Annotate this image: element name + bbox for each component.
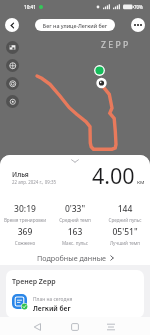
button[interactable]: 30:19 xyxy=(0,203,50,223)
button[interactable]: More options xyxy=(131,18,145,32)
button[interactable]: Recenter xyxy=(6,95,19,108)
staticText: Лучший темп xyxy=(100,240,150,246)
staticText: Средний пульс xyxy=(100,217,150,223)
staticText: 05'51" xyxy=(100,226,150,238)
button[interactable]: Show markers xyxy=(6,77,19,90)
staticText: 70% xyxy=(134,4,143,10)
staticText: 30:19 xyxy=(0,203,50,215)
button[interactable]: Back xyxy=(33,322,43,332)
button[interactable]: Collapse xyxy=(71,159,79,163)
staticText: 144 xyxy=(100,203,150,215)
staticText: План на сегодня xyxy=(33,296,73,303)
staticText: 163 xyxy=(50,226,100,238)
button[interactable]: 369 xyxy=(0,226,50,246)
staticText: Бег на улице·Легкий бег xyxy=(35,22,115,29)
staticText: Подробные данные xyxy=(37,253,107,263)
button[interactable]: Тренер Zepp xyxy=(6,270,144,318)
staticText: ZEPP xyxy=(101,39,131,51)
button[interactable]: Recent apps xyxy=(106,322,116,332)
staticText: 369 xyxy=(0,226,50,238)
button[interactable]: 0'33" xyxy=(50,203,100,223)
staticText: Время тренировки xyxy=(0,217,50,223)
button[interactable]: 144 xyxy=(100,203,150,223)
button[interactable]: 05'51" xyxy=(100,226,150,246)
button[interactable]: Бег на улице·Легкий бег xyxy=(35,19,115,31)
button[interactable]: Home xyxy=(70,322,80,332)
button[interactable]: 163 xyxy=(50,226,100,246)
button[interactable]: Подробные данные xyxy=(0,251,150,265)
staticText: 0'33" xyxy=(50,203,100,215)
button[interactable]: Map type xyxy=(6,59,19,72)
staticText: Макс. пульс xyxy=(50,240,100,246)
staticText: 22 апр. 2024 г., 09:35 xyxy=(12,179,56,185)
staticText: Сожжено xyxy=(0,240,50,246)
button[interactable]: Map layers xyxy=(6,41,19,54)
staticText: Легкий бег xyxy=(33,304,71,313)
staticText: Средний темп xyxy=(50,217,100,223)
staticText: км xyxy=(137,178,145,186)
staticText: Илья xyxy=(12,170,29,179)
staticText: Тренер Zepp xyxy=(12,277,56,287)
staticText: 10:41 xyxy=(24,4,36,10)
staticText: 4.00 xyxy=(92,161,135,190)
button[interactable]: Back xyxy=(5,18,19,32)
